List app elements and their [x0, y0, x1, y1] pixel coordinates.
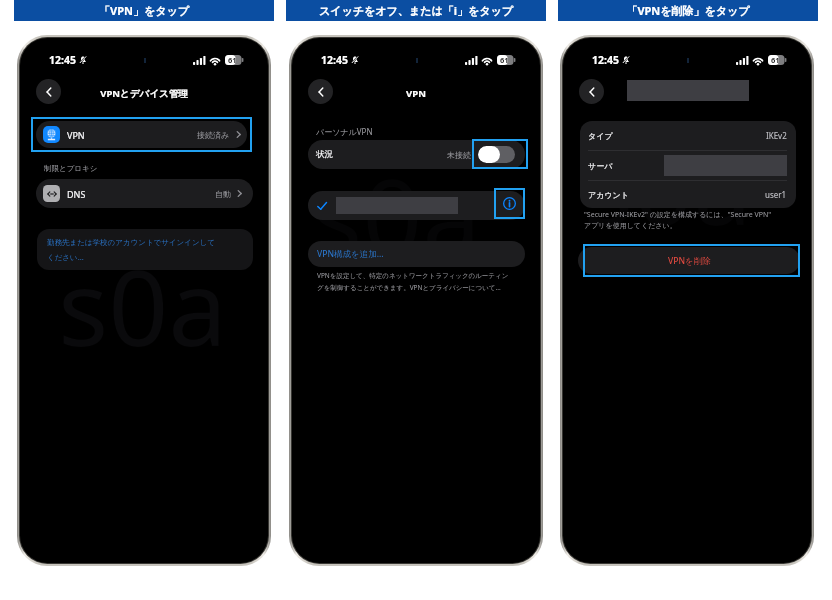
button[interactable]: VPN status toggle: [472, 139, 528, 169]
button[interactable]: VPN構成を追加...: [308, 241, 525, 267]
staticText: user1: [765, 189, 787, 200]
staticText: VPNを削除: [668, 255, 711, 267]
staticText: s0a: [58, 234, 228, 377]
button[interactable]: Back: [36, 79, 61, 104]
staticText: 12:45: [592, 53, 619, 67]
staticText: 勤務先または学校のアカウントでサインインして ください...: [47, 238, 215, 262]
staticText: サーバ: [588, 161, 613, 171]
button[interactable]: [308, 191, 525, 220]
staticText: 「VPN」をタップ: [99, 3, 189, 18]
staticText: タイプ: [588, 131, 613, 141]
button[interactable]: VPNを削除: [578, 247, 800, 274]
staticText: パーソナルVPN: [316, 126, 373, 137]
staticText: "Secure VPN-IKEv2" の設定を構成するには、"Secure VP…: [584, 210, 772, 230]
staticText: 12:45: [49, 53, 76, 67]
staticText: 接続済み: [197, 130, 230, 140]
staticText: s0a: [583, 113, 753, 256]
staticText: 未接続: [447, 150, 471, 160]
staticText: 12:45: [321, 53, 348, 67]
button[interactable]: Back: [308, 79, 333, 104]
staticText: DNS: [67, 188, 86, 200]
staticText: 61: [228, 55, 237, 65]
button[interactable]: DNS: [36, 179, 253, 208]
staticText: 自動: [215, 189, 231, 199]
staticText: 61: [771, 55, 780, 65]
button[interactable]: 状況: [308, 140, 525, 169]
button[interactable]: Back: [579, 79, 604, 104]
button[interactable]: More info: [494, 188, 525, 219]
staticText: IKEv2: [766, 130, 787, 141]
staticText: 61: [500, 55, 509, 65]
button[interactable]: 勤務先または学校のアカウントでサインインして ください...: [37, 229, 253, 270]
staticText: アカウント: [588, 190, 629, 200]
staticText: VPN: [67, 129, 85, 141]
staticText: スイッチをオフ、または「i」をタップ: [319, 3, 513, 18]
staticText: VPNとデバイス管理: [20, 87, 268, 100]
staticText: s0a: [312, 143, 482, 286]
staticText: 状況: [316, 149, 333, 160]
button[interactable]: VPN: [36, 121, 247, 148]
staticText: VPN構成を追加...: [317, 248, 384, 260]
staticText: 制限とプロキシ: [44, 164, 98, 173]
staticText: 「VPNを削除」をタップ: [626, 3, 750, 18]
staticText: VPNを設定して、特定のネットワークトラフィックのルーティングを制御することがで…: [317, 271, 513, 292]
staticText: VPN: [292, 87, 540, 100]
